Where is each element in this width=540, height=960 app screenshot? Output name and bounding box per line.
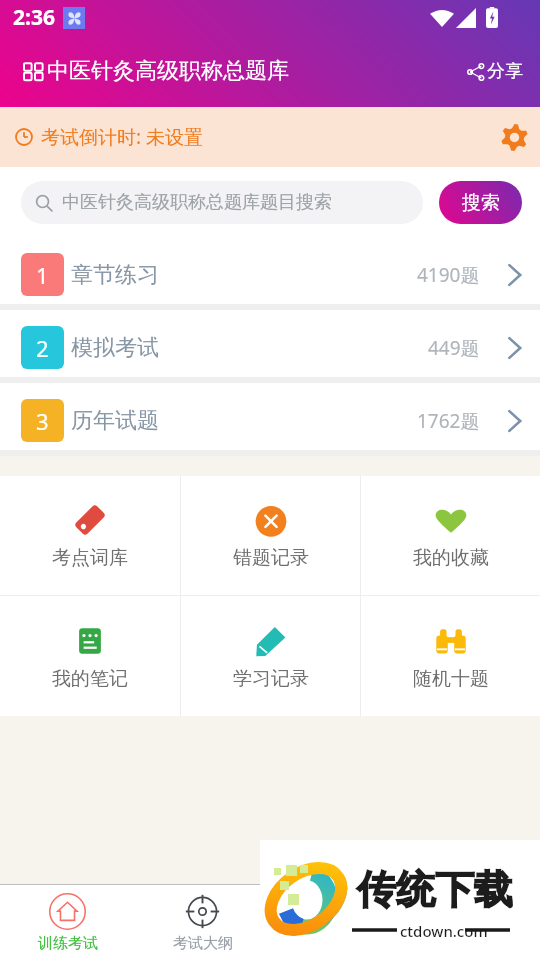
- button[interactable]: 中医针灸高级职称总题库题目搜索: [21, 181, 423, 224]
- staticText: 传统下载: [357, 865, 513, 914]
- button[interactable]: 搜索: [439, 181, 522, 224]
- button[interactable]: 我的收藏: [361, 476, 540, 595]
- staticText: 章节练习: [71, 261, 159, 289]
- button[interactable]: 考点词库: [0, 476, 180, 595]
- staticText: 分享: [487, 60, 523, 83]
- staticText: 4190题: [417, 262, 480, 288]
- staticText: 449题: [428, 335, 480, 361]
- staticText: 历年试题: [71, 407, 159, 435]
- button[interactable]: 考试倒计时: 未设置: [0, 107, 540, 167]
- staticText: 我的收藏: [413, 546, 489, 570]
- button[interactable]: 2: [0, 310, 540, 377]
- button[interactable]: 分享: [463, 54, 527, 89]
- staticText: 1762题: [417, 408, 480, 434]
- staticText: 考试倒计时: 未设置: [41, 124, 204, 150]
- staticText: 考试大纲: [173, 934, 233, 953]
- button[interactable]: 学习记录: [181, 596, 360, 716]
- staticText: 中医针灸高级职称总题库: [47, 57, 289, 85]
- staticText: 中医针灸高级职称总题库题目搜索: [62, 191, 332, 214]
- staticText: 考点词库: [52, 546, 128, 570]
- staticText: 3: [36, 406, 49, 436]
- button[interactable]: 1: [0, 237, 540, 304]
- button[interactable]: 考试大纲: [135, 885, 270, 960]
- button[interactable]: Settings: [496, 119, 532, 155]
- staticText: 搜索: [462, 191, 500, 215]
- staticText: 训练考试: [38, 934, 98, 953]
- staticText: 1: [36, 260, 49, 290]
- staticText: 错题记录: [233, 546, 309, 570]
- staticText: 2: [36, 333, 49, 363]
- button[interactable]: 随机十题: [361, 596, 540, 716]
- button[interactable]: 错题记录: [181, 476, 360, 595]
- button[interactable]: 我的笔记: [0, 596, 180, 716]
- staticText: 我的笔记: [52, 667, 128, 691]
- button[interactable]: 3: [0, 383, 540, 450]
- button[interactable]: 训练考试: [0, 885, 135, 960]
- staticText: ctdown.com: [400, 921, 488, 941]
- staticText: 随机十题: [413, 667, 489, 691]
- staticText: 学习记录: [233, 667, 309, 691]
- staticText: 模拟考试: [71, 334, 159, 362]
- staticText: 2:36: [13, 3, 55, 32]
